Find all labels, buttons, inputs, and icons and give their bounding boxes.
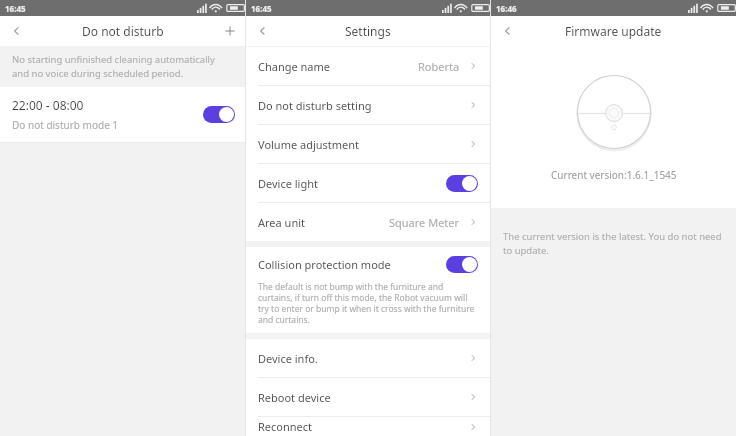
staticText: Collision protection mode <box>258 257 446 272</box>
button[interactable]: Toggle on <box>446 175 478 192</box>
button[interactable]: Back <box>248 16 278 46</box>
button[interactable]: Device light <box>246 164 490 202</box>
staticText: Change name <box>258 59 418 74</box>
button[interactable]: Add <box>215 16 245 46</box>
staticText: Reconnect <box>258 419 468 434</box>
staticText: Volume adjustment <box>258 137 468 152</box>
staticText: 16:45 <box>5 3 26 14</box>
staticText: Do not disturb mode 1 <box>12 118 119 132</box>
button[interactable]: Collision protection mode <box>246 247 490 333</box>
staticText: Current version:1.6.1_1545 <box>551 168 677 182</box>
staticText: Area unit <box>258 215 389 230</box>
button[interactable]: Back <box>2 16 32 46</box>
button[interactable]: Volume adjustment <box>246 125 490 163</box>
button[interactable]: Do not disturb setting <box>246 86 490 124</box>
staticText: 16:46 <box>496 3 517 14</box>
button[interactable]: Toggle on <box>446 256 478 273</box>
staticText: 22:00 - 08:00 <box>12 97 84 113</box>
button[interactable]: Toggle on <box>203 106 235 123</box>
button[interactable]: Reboot device <box>246 378 490 416</box>
staticText: The current version is the latest. You d… <box>503 230 722 257</box>
staticText: Device info. <box>258 351 468 366</box>
staticText: Device light <box>258 176 446 191</box>
staticText: Firmware update <box>565 23 662 39</box>
staticText: Do not disturb <box>82 23 164 39</box>
button[interactable]: Change name <box>246 47 490 85</box>
staticText: No starting unfinished cleaning automati… <box>12 53 233 80</box>
staticText: Reboot device <box>258 390 468 405</box>
staticText: Settings <box>345 23 391 39</box>
button[interactable]: 22:00 - 08:00 <box>0 87 245 142</box>
button[interactable]: Area unit <box>246 203 490 241</box>
staticText: Do not disturb setting <box>258 98 468 113</box>
staticText: 16:45 <box>251 3 272 14</box>
button[interactable]: Back <box>493 16 523 46</box>
staticText: Roberta <box>418 59 460 74</box>
staticText: The default is not bump with the furnitu… <box>258 281 478 325</box>
button[interactable]: Device info. <box>246 339 490 377</box>
button[interactable]: Reconnect <box>246 417 490 436</box>
staticText: Square Meter <box>389 215 460 230</box>
